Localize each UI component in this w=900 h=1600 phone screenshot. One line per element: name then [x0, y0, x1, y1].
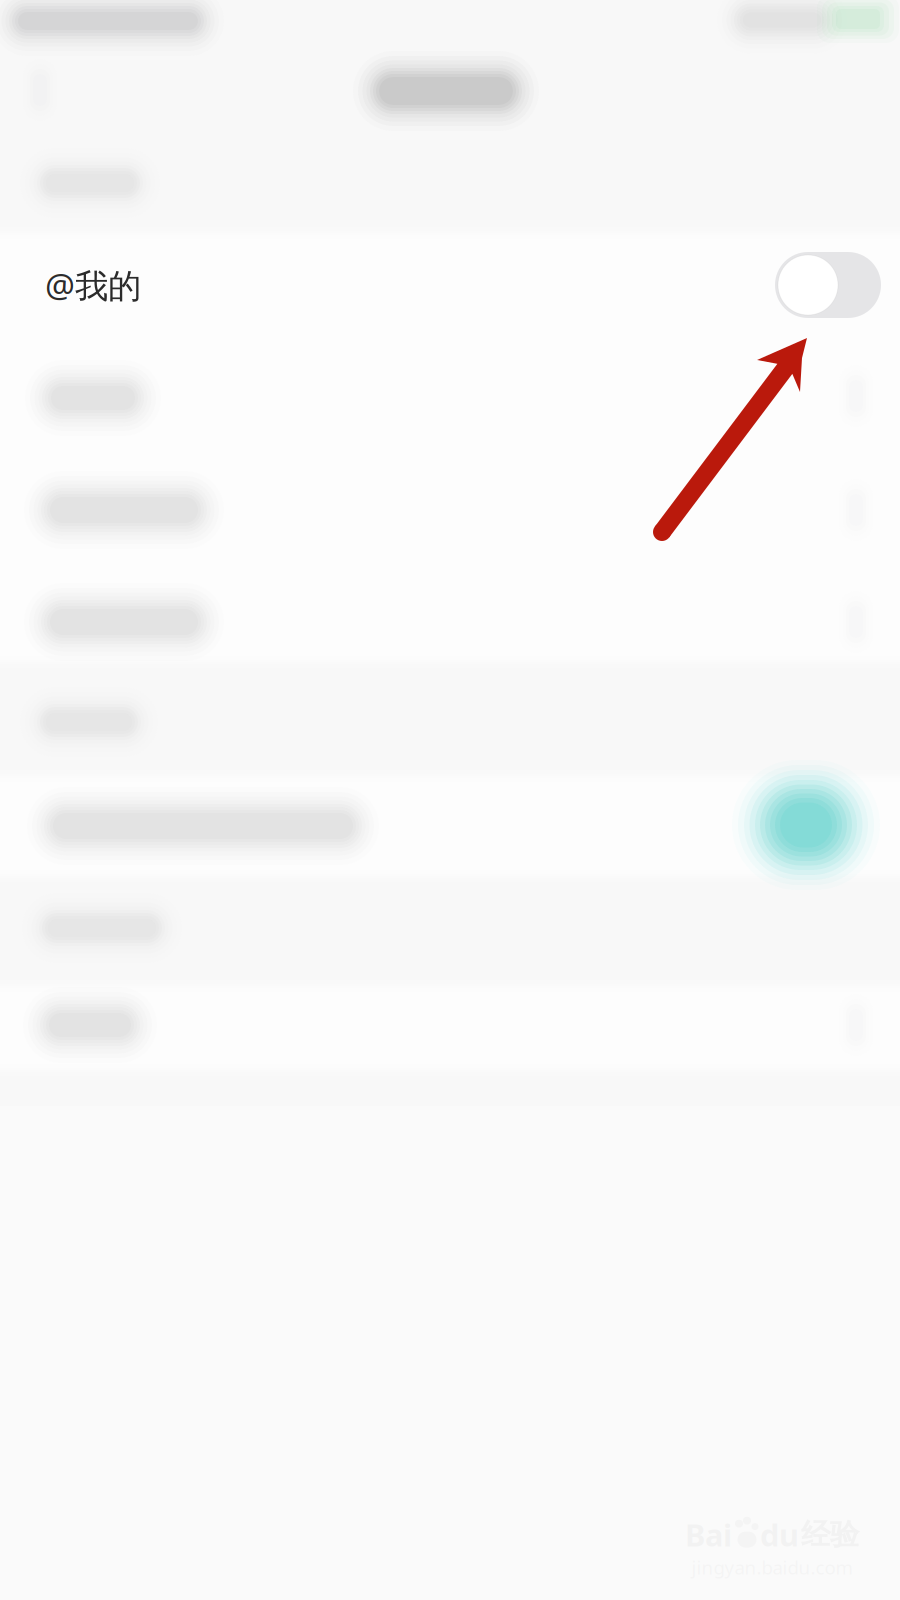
staticText: @我的: [45, 263, 141, 307]
staticText: du: [760, 1514, 799, 1555]
button[interactable]: @我的: [0, 229, 900, 341]
staticText: 经验: [801, 1517, 859, 1553]
staticText: Bai: [685, 1514, 732, 1555]
